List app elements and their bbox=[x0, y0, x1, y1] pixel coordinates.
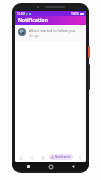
staticText: 100% bbox=[71, 12, 79, 16]
button[interactable]: Volume button bbox=[88, 64, 90, 90]
button[interactable]: Back bbox=[67, 162, 79, 171]
staticText: 11:50 bbox=[17, 12, 25, 16]
staticText: Notification bbox=[18, 17, 48, 24]
button[interactable]: Profile bbox=[76, 153, 84, 162]
button[interactable]: Albert started to follow you. bbox=[15, 25, 86, 41]
button[interactable]: Notification bbox=[49, 154, 73, 160]
staticText: Notification bbox=[55, 155, 71, 159]
button[interactable]: Add bbox=[39, 153, 47, 162]
button[interactable]: Power button bbox=[88, 46, 90, 58]
button[interactable]: Search bbox=[28, 153, 36, 162]
button[interactable]: Recent apps bbox=[22, 162, 34, 171]
button[interactable]: Home bbox=[45, 162, 57, 171]
button[interactable]: Home bbox=[17, 153, 25, 162]
staticText: 4m ago bbox=[29, 34, 39, 38]
staticText: Albert started to follow you. bbox=[29, 28, 76, 33]
